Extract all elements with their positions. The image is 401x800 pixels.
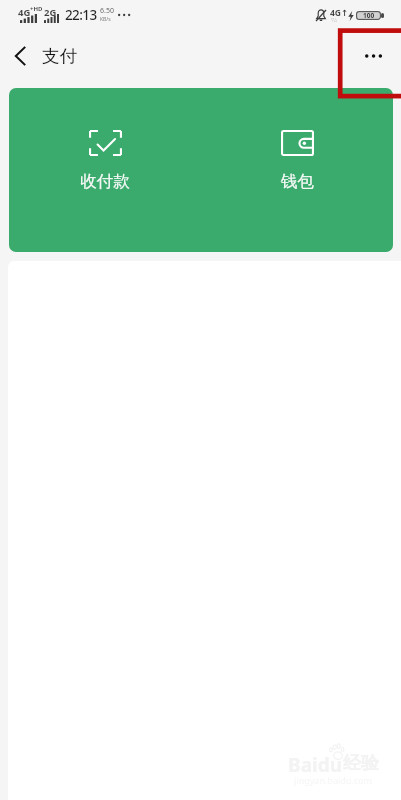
staticText: 收付款 [80,171,130,192]
staticText: 2G [44,6,57,19]
staticText: ▽△ [331,17,338,22]
staticText: 100 [363,11,375,20]
staticText: +HD [30,5,43,13]
button[interactable]: 收付款 [9,88,201,252]
staticText: Baidu [288,752,343,774]
button[interactable]: 钱包 [201,88,393,252]
staticText: 钱包 [281,171,314,192]
staticText: 支付 [42,45,77,67]
staticText: KB/s [100,16,111,23]
staticText: 4G↑ [330,7,349,19]
button[interactable]: Back [0,29,40,82]
button[interactable]: More options [348,29,401,82]
staticText: 经验 [343,752,379,774]
staticText: 22:13 [65,6,97,24]
staticText: 6.50 [100,6,114,16]
staticText: 4G [18,6,31,19]
